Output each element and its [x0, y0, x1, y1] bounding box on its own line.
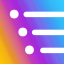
button[interactable]: List item 2	[0, 0, 64, 64]
button[interactable]: List item 3	[0, 0, 64, 64]
button[interactable]: List item 1	[0, 0, 64, 64]
